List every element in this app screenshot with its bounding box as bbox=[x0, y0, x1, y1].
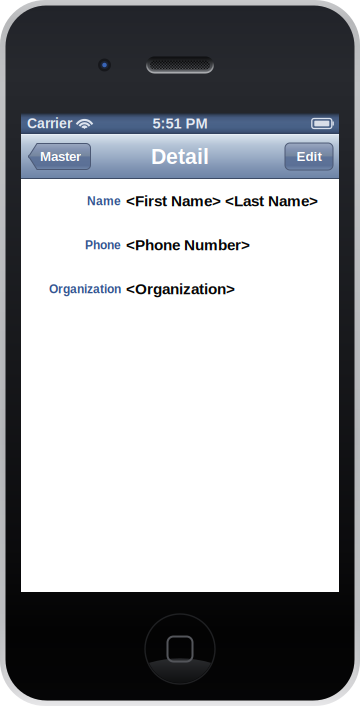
staticText: <Phone Number> bbox=[126, 236, 250, 254]
staticText: Master bbox=[40, 149, 81, 164]
staticText: Detail bbox=[151, 145, 209, 168]
staticText: 5:51 PM bbox=[152, 115, 207, 132]
staticText: <Organization> bbox=[126, 280, 235, 298]
staticText: Edit bbox=[296, 149, 321, 164]
button[interactable]: Edit bbox=[285, 143, 333, 170]
button[interactable]: Master bbox=[27, 143, 91, 170]
staticText: Organization bbox=[49, 282, 121, 296]
staticText: Phone bbox=[85, 238, 121, 252]
staticText: Carrier bbox=[27, 116, 72, 131]
staticText: Name bbox=[87, 194, 121, 208]
staticText: <First Name> <Last Name> bbox=[126, 192, 318, 210]
